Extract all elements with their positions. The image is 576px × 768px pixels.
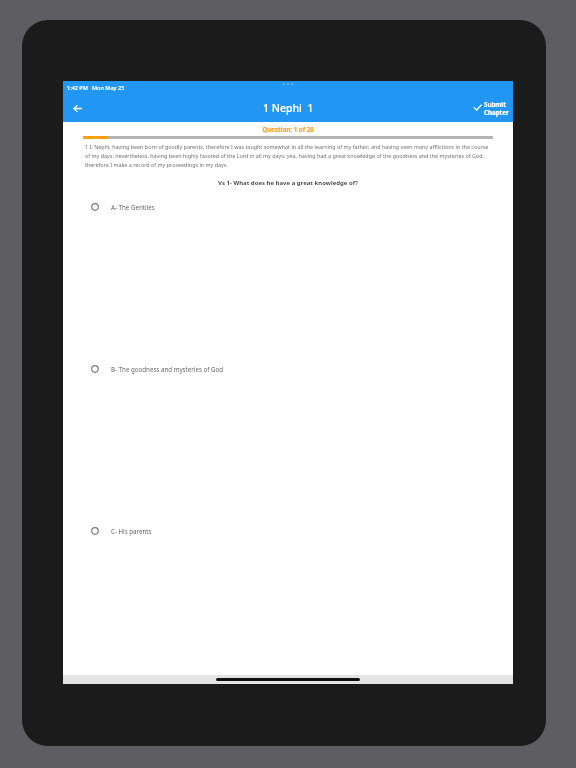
staticText: Vs 1- What does he have a great knowledg…: [83, 179, 493, 187]
staticText: Chapter: [484, 108, 509, 116]
staticText: B- The goodness and mysteries of God: [111, 365, 224, 373]
button[interactable]: A- The Gentiles: [63, 201, 513, 213]
button[interactable]: B- The goodness and mysteries of God: [63, 363, 513, 375]
staticText: Question: 1 of 20: [63, 125, 513, 133]
staticText: A- The Gentiles: [111, 203, 155, 211]
button[interactable]: C- His parents: [63, 525, 513, 537]
staticText: Submit: [484, 100, 506, 108]
staticText: 1 Nephi 1: [263, 101, 314, 115]
button[interactable]: Submit: [469, 93, 513, 122]
staticText: C- His parents: [111, 527, 152, 535]
button[interactable]: Back: [63, 94, 91, 122]
staticText: 1:42 PM Mon May 23: [67, 84, 125, 91]
staticText: 1 I, Nephi, having been born of goodly p…: [85, 143, 491, 169]
